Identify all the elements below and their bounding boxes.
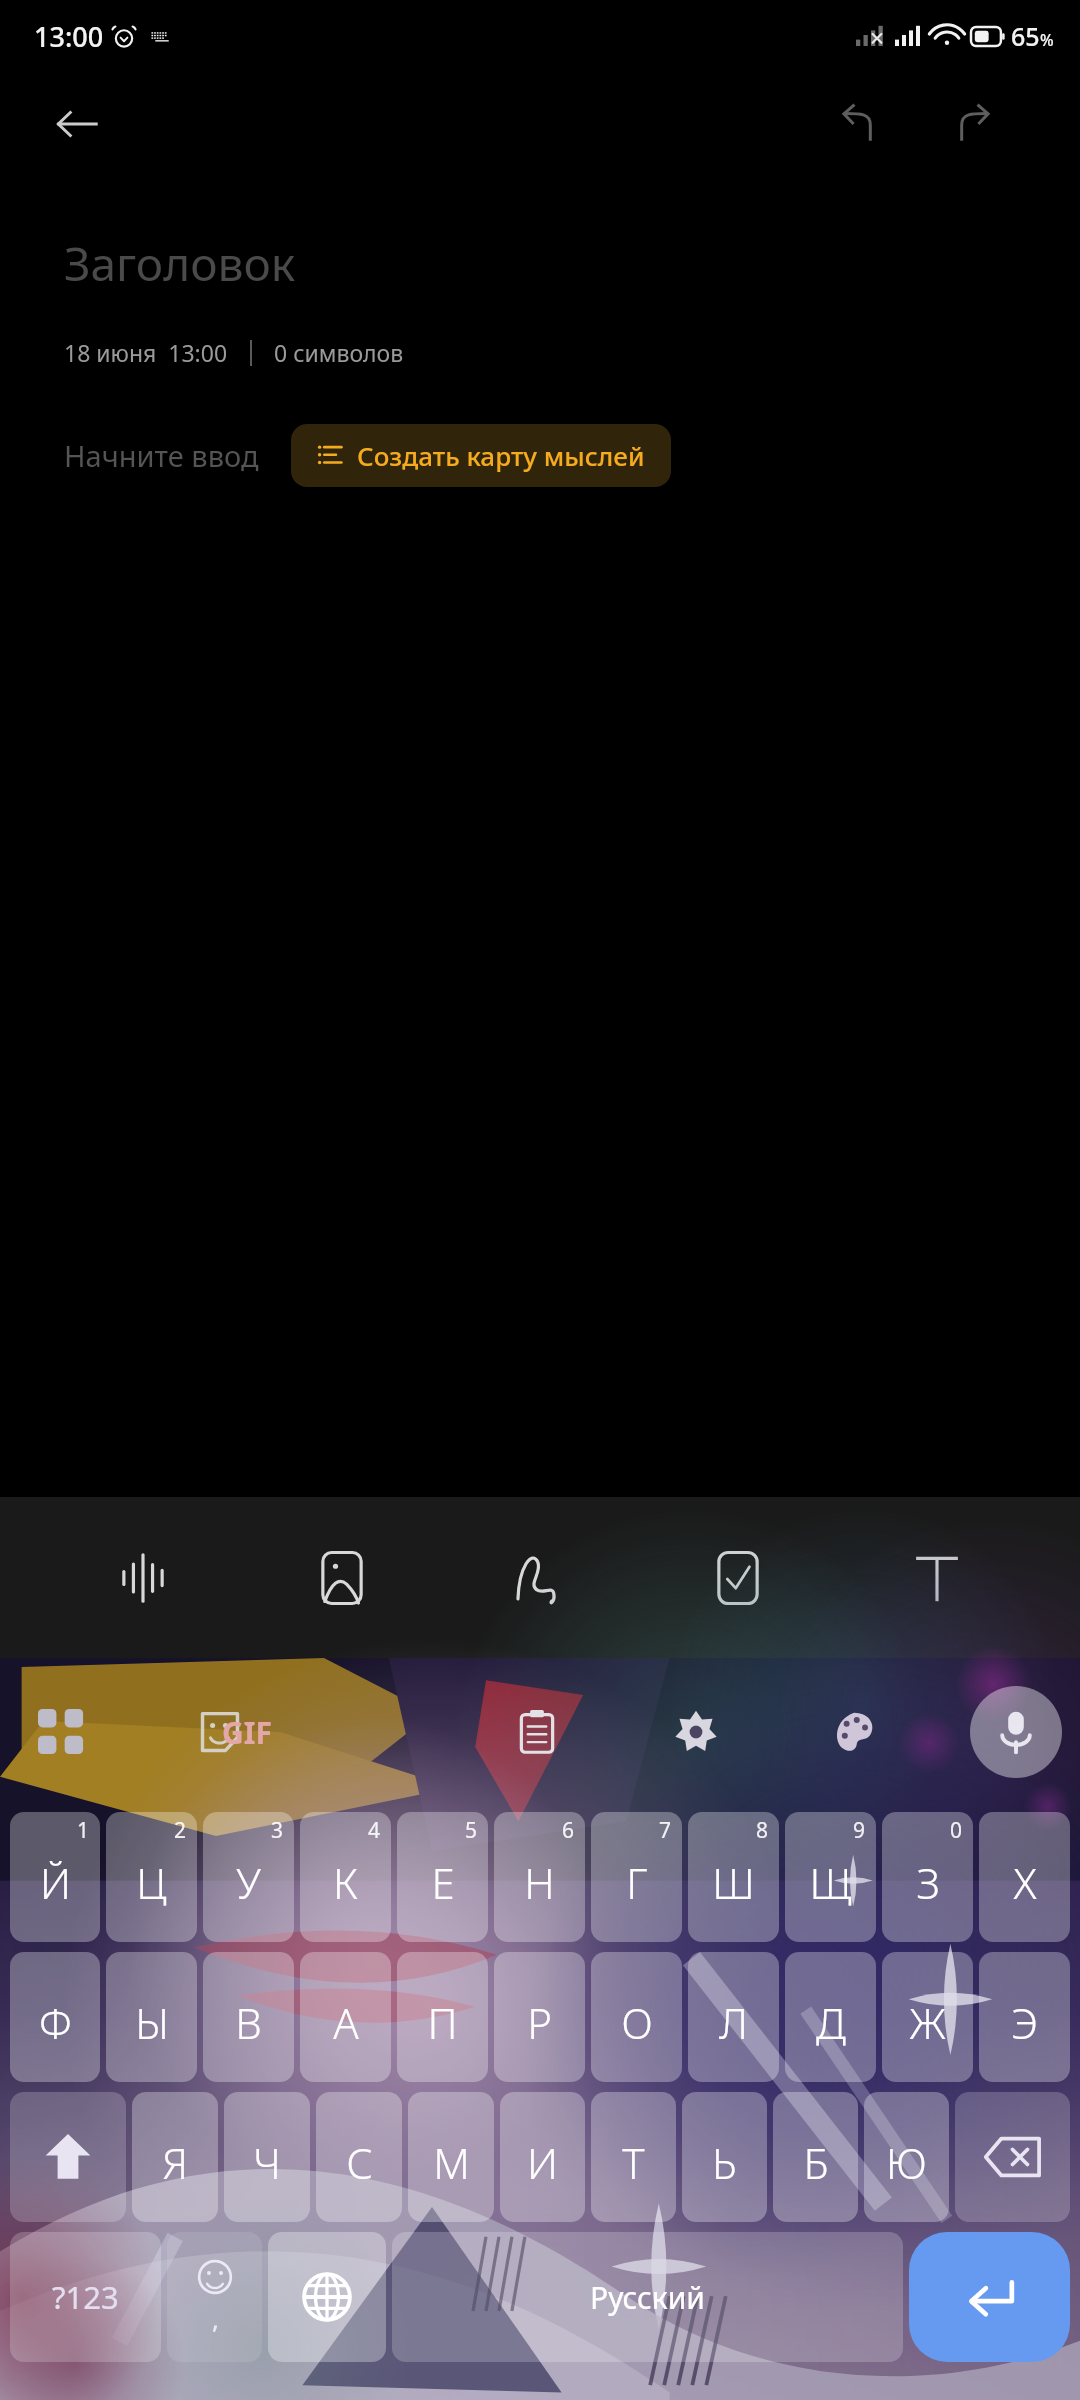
staticText: 1 (77, 1816, 90, 1845)
staticText: Х (1013, 1854, 1037, 1911)
button[interactable]: Ф (10, 1952, 100, 2082)
staticText: Я (162, 2134, 188, 2191)
button[interactable]: GIF (335, 1689, 421, 1775)
staticText: 2 (174, 1816, 187, 1845)
staticText: 6 (562, 1816, 575, 1845)
button[interactable]: Text style (882, 1523, 992, 1633)
staticText: Ь (712, 2134, 737, 2191)
button[interactable]: Ы (106, 1952, 197, 2082)
staticText: Ю (886, 2134, 927, 2191)
button[interactable]: Т (591, 2092, 676, 2222)
staticText: З (916, 1854, 940, 1911)
staticText: 7 (659, 1816, 672, 1845)
staticText: Русский (590, 2277, 705, 2318)
button[interactable]: Checklist (683, 1523, 793, 1633)
staticText: О (621, 1994, 653, 2051)
button[interactable]: Back (42, 88, 114, 160)
button[interactable]: Русский (392, 2232, 903, 2362)
button[interactable]: Ш (688, 1812, 779, 1942)
button[interactable]: Й (10, 1812, 100, 1942)
staticText: , (212, 2301, 219, 2336)
button[interactable]: И (500, 2092, 585, 2222)
staticText: Т (622, 2134, 645, 2191)
button[interactable]: П (397, 1952, 488, 2082)
staticText: С (346, 2134, 373, 2191)
button[interactable]: Stickers (177, 1689, 263, 1775)
button[interactable]: В (203, 1952, 294, 2082)
staticText: В (235, 1994, 262, 2051)
button[interactable]: Р (494, 1952, 585, 2082)
staticText: Н (524, 1854, 555, 1911)
button[interactable]: А (300, 1952, 391, 2082)
button[interactable]: Ь (682, 2092, 767, 2222)
staticText: 5 (465, 1816, 478, 1845)
staticText: Щ (809, 1854, 852, 1911)
button[interactable]: Ч (224, 2092, 310, 2222)
button[interactable]: Enter (909, 2232, 1070, 2362)
staticText: 0 символов (274, 337, 404, 368)
staticText: 0 (950, 1816, 963, 1845)
staticText: 8 (756, 1816, 769, 1845)
staticText: Э (1011, 1994, 1038, 2051)
staticText: М (433, 2134, 470, 2191)
staticText: Ж (909, 1994, 946, 2051)
staticText: 9 (853, 1816, 866, 1845)
button[interactable]: Заголовок (64, 232, 296, 295)
button[interactable]: Я (132, 2092, 218, 2222)
button[interactable]: Б (773, 2092, 858, 2222)
staticText: Создать карту мыслей (357, 438, 645, 473)
button[interactable]: Создать карту мыслей (291, 424, 671, 487)
button[interactable]: Insert image (287, 1523, 397, 1633)
button[interactable]: Undo (822, 88, 894, 160)
button[interactable]: ?123 (10, 2232, 161, 2362)
button[interactable]: У (203, 1812, 294, 1942)
staticText: Г (626, 1854, 648, 1911)
button[interactable]: Л (688, 1952, 779, 2082)
staticText: GIF (222, 1712, 272, 1753)
staticText: А (333, 1994, 359, 2051)
staticText: 3 (271, 1816, 284, 1845)
button[interactable]: Э (979, 1952, 1070, 2082)
button[interactable]: Начните ввод (64, 436, 259, 475)
button[interactable]: Д (785, 1952, 876, 2082)
button[interactable]: Backspace (955, 2092, 1070, 2222)
button[interactable]: К (300, 1812, 391, 1942)
button[interactable]: Г (591, 1812, 682, 1942)
button[interactable]: Shift (10, 2092, 126, 2222)
button[interactable]: Н (494, 1812, 585, 1942)
button[interactable]: Ж (882, 1952, 973, 2082)
button[interactable]: Voice input (970, 1686, 1062, 1778)
button[interactable]: Handwriting (485, 1523, 595, 1633)
button[interactable]: Voice recording (88, 1523, 198, 1633)
staticText: К (333, 1854, 358, 1911)
button[interactable]: Ц (106, 1812, 197, 1942)
button[interactable]: З (882, 1812, 973, 1942)
staticText: Ы (135, 1994, 169, 2051)
staticText: Е (431, 1854, 455, 1911)
button[interactable]: Settings (653, 1689, 739, 1775)
button[interactable]: Clipboard (494, 1689, 580, 1775)
staticText: Ш (712, 1854, 755, 1911)
button[interactable]: Щ (785, 1812, 876, 1942)
button[interactable]: Е (397, 1812, 488, 1942)
staticText: Ч (253, 2134, 281, 2191)
button[interactable]: Change language (268, 2232, 386, 2362)
button[interactable]: Emoji (167, 2232, 262, 2362)
staticText: Д (816, 1994, 846, 2051)
button[interactable]: Redo (938, 88, 1010, 160)
button[interactable]: Keyboard switcher (18, 1689, 104, 1775)
button[interactable]: С (316, 2092, 402, 2222)
staticText: Й (40, 1854, 71, 1911)
button[interactable]: Х (979, 1812, 1070, 1942)
staticText: Б (803, 2134, 829, 2191)
staticText: % (1040, 29, 1054, 51)
button[interactable]: Ю (864, 2092, 949, 2222)
button[interactable]: О (591, 1952, 682, 2082)
button[interactable]: Themes (811, 1689, 897, 1775)
staticText: Р (527, 1994, 552, 2051)
staticText: ?123 (52, 2276, 119, 2318)
staticText: 13:00 (34, 18, 104, 55)
staticText: 65 (1011, 19, 1040, 53)
button[interactable]: М (408, 2092, 494, 2222)
staticText: П (427, 1994, 458, 2051)
